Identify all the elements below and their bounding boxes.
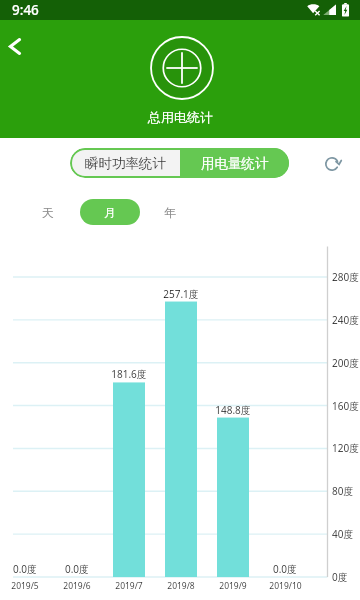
button[interactable]: 月	[80, 199, 140, 225]
button[interactable]: 2019/9 148.8度	[207, 403, 259, 590]
button[interactable]: 2019/8 257.1度	[155, 287, 207, 590]
button[interactable]: 瞬时功率统计	[70, 148, 180, 178]
staticText: 用电量统计	[201, 155, 269, 172]
staticText: 240度	[332, 313, 360, 327]
staticText: 2019/7	[115, 580, 143, 592]
button[interactable]: 2019/6 0.0度	[51, 562, 103, 590]
staticText: 2019/6	[63, 580, 91, 592]
staticText: 200度	[332, 356, 360, 370]
staticText: 2019/5	[11, 580, 39, 592]
staticText: 2019/10	[269, 580, 302, 592]
staticText: 年	[164, 205, 176, 220]
button[interactable]: 天	[33, 199, 63, 225]
staticText: 80度	[332, 484, 354, 498]
staticText: 40度	[332, 527, 354, 541]
button[interactable]: 用电量统计	[180, 148, 289, 178]
staticText: 257.1度	[155, 287, 207, 301]
staticText: 2019/8	[167, 580, 195, 592]
button[interactable]: 年	[155, 199, 185, 225]
staticText: 9:46	[12, 1, 39, 19]
staticText: 天	[42, 205, 54, 220]
staticText: 148.8度	[207, 403, 259, 417]
staticText: 120度	[332, 441, 360, 455]
staticText: 总用电统计	[148, 109, 213, 125]
button[interactable]: Back	[0, 28, 32, 64]
button[interactable]: 2019/5 0.0度	[0, 562, 51, 590]
staticText: 瞬时功率统计	[85, 155, 166, 172]
button[interactable]: 2019/10 0.0度	[259, 562, 311, 590]
staticText: 0.0度	[259, 562, 311, 576]
staticText: 0度	[332, 570, 348, 584]
staticText: 181.6度	[103, 367, 155, 381]
staticText: 280度	[332, 270, 360, 284]
button[interactable]: Refresh	[320, 152, 344, 176]
staticText: 0.0度	[51, 562, 103, 576]
staticText: 160度	[332, 399, 360, 413]
staticText: 2019/9	[219, 580, 247, 592]
staticText: 0.0度	[0, 562, 51, 576]
button[interactable]: 2019/7 181.6度	[103, 367, 155, 590]
staticText: 月	[104, 205, 116, 220]
